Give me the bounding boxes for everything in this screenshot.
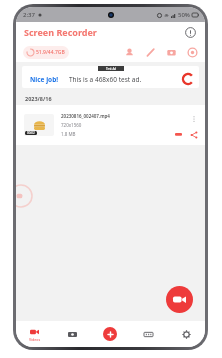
button[interactable]: Test Ad — [22, 66, 199, 88]
button[interactable]: Facecam — [122, 45, 136, 59]
staticText: Screen Recorder — [24, 26, 97, 38]
button[interactable]: Info — [184, 26, 197, 39]
staticText: Test Ad — [106, 67, 117, 71]
staticText: 2023/8/16 — [25, 95, 52, 102]
button[interactable]: Record settings — [185, 45, 199, 59]
button[interactable]: 51.9/44.7GB — [23, 46, 69, 59]
button[interactable]: Share — [188, 129, 199, 140]
button[interactable]: Draw — [143, 45, 157, 59]
button[interactable]: Screenshot — [164, 45, 178, 59]
staticText: 00:02 — [27, 131, 35, 135]
button[interactable]: 00:02 — [16, 105, 205, 145]
button[interactable]: Start recording — [166, 286, 193, 313]
staticText: 1.8 MB — [61, 131, 76, 137]
button[interactable]: Screenshots — [53, 321, 91, 347]
button[interactable]: GIFs — [129, 321, 167, 347]
button[interactable]: Videos — [16, 321, 53, 347]
staticText: 50% — [178, 11, 190, 19]
staticText: 720x1560 — [61, 122, 82, 128]
staticText: Nice job! — [30, 75, 59, 84]
button[interactable]: More options — [189, 114, 199, 124]
staticText: 2:37 — [23, 11, 35, 19]
staticText: 20230816_002407.mp4 — [61, 113, 110, 119]
staticText: This is a 468x60 test ad. — [69, 75, 142, 84]
button[interactable]: Settings — [167, 321, 205, 347]
staticText: Videos — [29, 337, 41, 342]
staticText: 51.9/44.7GB — [36, 49, 65, 56]
button[interactable]: New recording — [91, 321, 129, 347]
button[interactable]: Trim — [173, 129, 184, 140]
